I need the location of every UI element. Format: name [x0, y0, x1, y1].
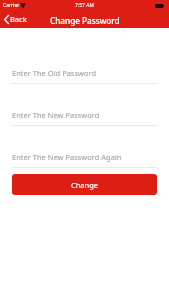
staticText: Back — [10, 14, 27, 24]
button[interactable]: Enter The New Password — [12, 110, 157, 126]
staticText: Enter The Old Password — [12, 68, 97, 78]
staticText: Enter The New Password — [12, 110, 100, 120]
staticText: Enter The New Password Again — [12, 152, 122, 162]
staticText: Carrier — [3, 2, 20, 9]
staticText: Change — [71, 180, 99, 190]
button[interactable]: Enter The Old Password — [12, 68, 157, 84]
button[interactable]: Change — [12, 174, 157, 195]
button[interactable]: Back — [0, 11, 33, 28]
staticText: 7:57 AM — [75, 2, 94, 9]
button[interactable]: Enter The New Password Again — [12, 152, 157, 168]
staticText: Change Password — [50, 15, 120, 26]
